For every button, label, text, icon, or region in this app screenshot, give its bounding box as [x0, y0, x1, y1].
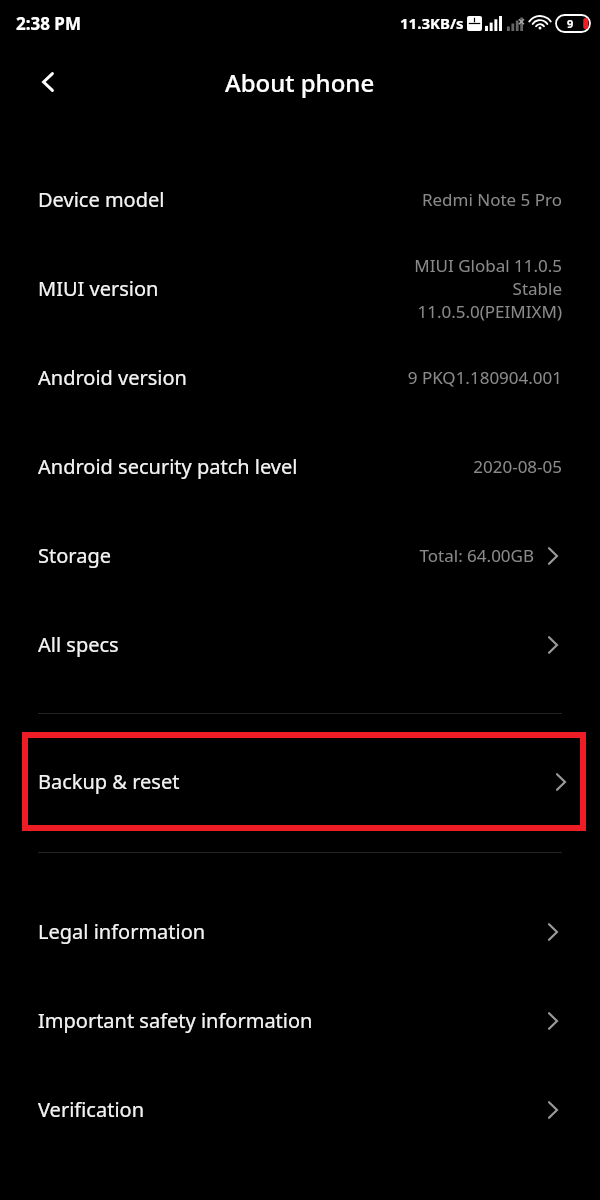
staticText: 9 PKQ1.180904.001 — [407, 366, 562, 389]
button[interactable]: MIUI version — [0, 244, 600, 333]
button[interactable]: Android security patch level — [0, 422, 600, 511]
staticText: Android version — [38, 364, 187, 391]
button[interactable]: Verification — [0, 1065, 600, 1154]
staticText: Important safety information — [38, 1007, 313, 1034]
staticText: 11.3KB/s — [400, 13, 464, 33]
staticText: Total: 64.00GB — [419, 544, 534, 567]
staticText: 11.0.5.0(PEIMIXM) — [417, 300, 562, 323]
staticText: Verification — [38, 1096, 144, 1123]
staticText: Android security patch level — [38, 453, 298, 480]
staticText: 2:38 PM — [16, 12, 81, 35]
button[interactable]: Back — [26, 60, 70, 104]
staticText: Legal information — [38, 918, 206, 945]
staticText: Redmi Note 5 Pro — [421, 188, 562, 211]
staticText: Device model — [38, 186, 165, 213]
staticText: MIUI version — [38, 275, 159, 302]
button[interactable]: Device model — [0, 155, 600, 244]
button[interactable]: Legal information — [0, 887, 600, 976]
button[interactable]: All specs — [0, 600, 600, 689]
staticText: 9 — [567, 16, 574, 31]
button[interactable]: Important safety information — [0, 976, 600, 1065]
staticText: All specs — [38, 631, 119, 658]
staticText: Storage — [38, 542, 111, 569]
staticText: MIUI Global 11.0.5 — [414, 254, 562, 277]
button[interactable]: Backup & reset — [25, 735, 583, 828]
staticText: Stable — [512, 277, 562, 300]
staticText: Backup & reset — [38, 768, 180, 795]
staticText: About phone — [225, 66, 375, 99]
button[interactable]: Storage — [0, 511, 600, 600]
staticText: 2020-08-05 — [473, 455, 562, 478]
button[interactable]: Android version — [0, 333, 600, 422]
